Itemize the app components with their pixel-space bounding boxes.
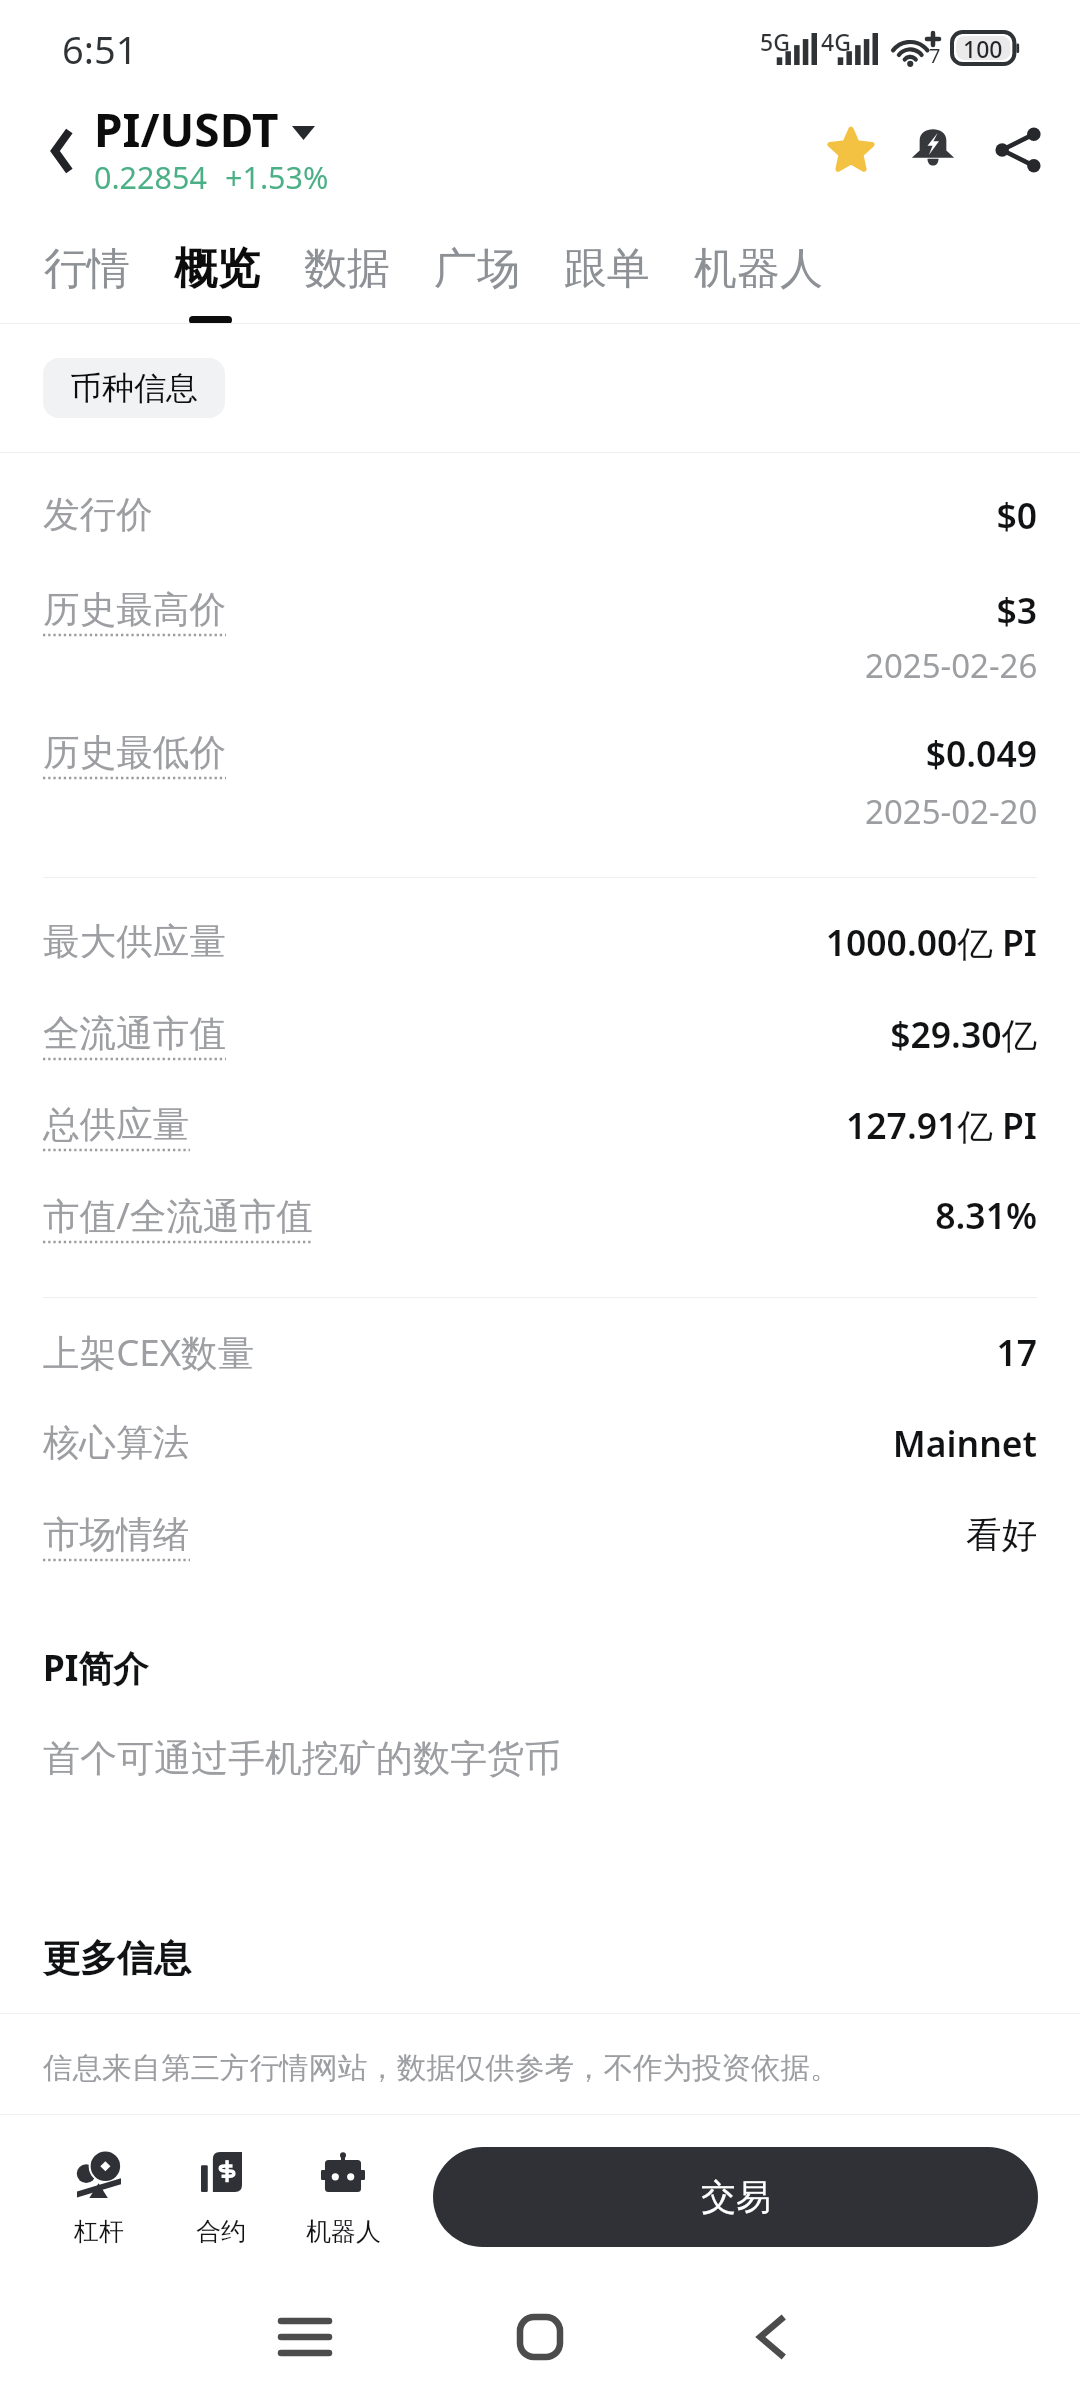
- staticText: $3: [996, 586, 1037, 634]
- button[interactable]: 核心算法: [0, 1397, 1080, 1489]
- staticText: 合约: [196, 2216, 246, 2247]
- button[interactable]: 跟单: [542, 220, 672, 324]
- staticText: +1.53%: [225, 156, 329, 198]
- staticText: 机器人: [306, 2216, 381, 2247]
- staticText: 首个可通过手机挖矿的数字货币: [43, 1735, 561, 1782]
- staticText: 核心算法: [43, 1420, 190, 1466]
- staticText: 发行价: [43, 492, 153, 538]
- button[interactable]: 杠杆: [38, 2152, 160, 2247]
- button[interactable]: 币种信息: [43, 358, 225, 418]
- button[interactable]: 历史最低价: [0, 707, 1080, 799]
- staticText: 7: [929, 42, 941, 69]
- staticText: 5G: [760, 26, 790, 57]
- staticText: 8.31%: [935, 1191, 1037, 1239]
- staticText: PI/USDT: [94, 98, 279, 161]
- button[interactable]: Home: [485, 2280, 595, 2390]
- button[interactable]: 行情: [22, 220, 152, 324]
- button[interactable]: 市值/全流通市值: [0, 1169, 1080, 1261]
- staticText: 交易: [701, 2175, 771, 2219]
- button[interactable]: 全流通市值: [0, 988, 1080, 1080]
- staticText: 跟单: [564, 242, 650, 296]
- staticText: PI简介: [43, 1644, 149, 1692]
- staticText: 上架CEX数量: [43, 1327, 255, 1377]
- staticText: $0: [996, 491, 1037, 539]
- button[interactable]: 合约: [160, 2152, 282, 2247]
- staticText: $29.30亿: [890, 1010, 1037, 1058]
- button[interactable]: Price alert: [889, 100, 977, 188]
- button[interactable]: 广场: [412, 220, 542, 324]
- staticText: 更多信息: [43, 1935, 191, 1982]
- staticText: 127.91亿 PI: [845, 1101, 1037, 1149]
- staticText: 6:51: [62, 23, 138, 75]
- staticText: 最大供应量: [43, 919, 226, 965]
- staticText: Mainnet: [892, 1419, 1037, 1467]
- staticText: 2025-02-26: [865, 643, 1038, 688]
- button[interactable]: Back: [717, 2280, 827, 2390]
- staticText: 概览: [174, 242, 260, 296]
- button[interactable]: Recent apps: [250, 2280, 360, 2390]
- staticText: 1000.00亿 PI: [825, 918, 1037, 966]
- staticText: $0.049: [925, 729, 1037, 777]
- button[interactable]: 发行价: [0, 469, 1080, 561]
- staticText: 2025-02-20: [865, 789, 1038, 834]
- staticText: 17: [996, 1328, 1037, 1376]
- button[interactable]: 概览: [152, 220, 282, 324]
- staticText: 数据: [304, 242, 390, 296]
- staticText: 广场: [434, 242, 520, 296]
- button[interactable]: 数据: [282, 220, 412, 324]
- button[interactable]: Back: [26, 121, 96, 191]
- staticText: 0.22854: [94, 156, 207, 198]
- staticText: 市值/全流通市值: [43, 1190, 313, 1240]
- staticText: 历史最高价: [43, 587, 226, 633]
- staticText: 看好: [966, 1513, 1037, 1558]
- button[interactable]: 交易: [433, 2147, 1038, 2247]
- staticText: 信息来自第三方行情网站，数据仅供参考，不作为投资依据。: [43, 2050, 840, 2087]
- button[interactable]: 机器人: [282, 2152, 404, 2247]
- staticText: 行情: [44, 242, 130, 296]
- button[interactable]: 总供应量: [0, 1079, 1080, 1171]
- button[interactable]: Share: [974, 106, 1062, 194]
- staticText: 机器人: [694, 242, 823, 296]
- staticText: 4G: [821, 26, 851, 57]
- staticText: 杠杆: [74, 2216, 124, 2247]
- staticText: 100: [963, 33, 1003, 64]
- staticText: 市场情绪: [43, 1512, 190, 1558]
- button[interactable]: 最大供应量: [0, 896, 1080, 988]
- button[interactable]: 上架CEX数量: [0, 1306, 1080, 1398]
- button[interactable]: 机器人: [672, 220, 845, 324]
- staticText: 总供应量: [43, 1102, 190, 1148]
- button[interactable]: 市场情绪: [0, 1489, 1080, 1581]
- button[interactable]: 历史最高价: [0, 564, 1080, 656]
- button[interactable]: Favorite: [807, 106, 895, 194]
- staticText: 历史最低价: [43, 730, 226, 776]
- staticText: 全流通市值: [43, 1011, 226, 1057]
- staticText: 币种信息: [70, 368, 198, 408]
